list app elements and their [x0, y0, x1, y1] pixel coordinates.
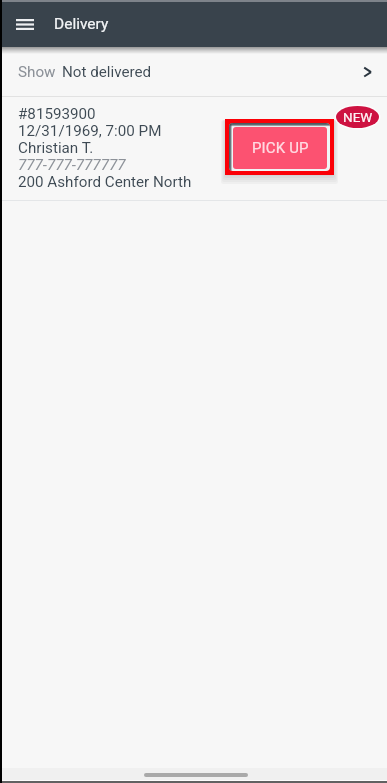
staticText: Delivery [54, 15, 109, 33]
staticText: Christian T. [18, 139, 94, 156]
button[interactable]: PICK UP [229, 123, 330, 171]
staticText: #81593900 [18, 105, 96, 122]
staticText: PICK UP [252, 139, 309, 157]
button[interactable]: Show [0, 47, 387, 96]
staticText: NEW [343, 109, 373, 125]
staticText: 12/31/1969, 7:00 PM [18, 122, 162, 139]
other: Change filter [353, 57, 383, 87]
staticText: Show [18, 63, 56, 81]
staticText: Not delivered [62, 63, 152, 81]
button[interactable]: Open navigation menu [3, 3, 47, 47]
button[interactable]: #81593900 [0, 97, 387, 200]
button[interactable]: NEW [333, 103, 382, 131]
staticText: 777-777-777777 [18, 156, 126, 173]
staticText: 200 Ashford Center North [18, 173, 192, 190]
